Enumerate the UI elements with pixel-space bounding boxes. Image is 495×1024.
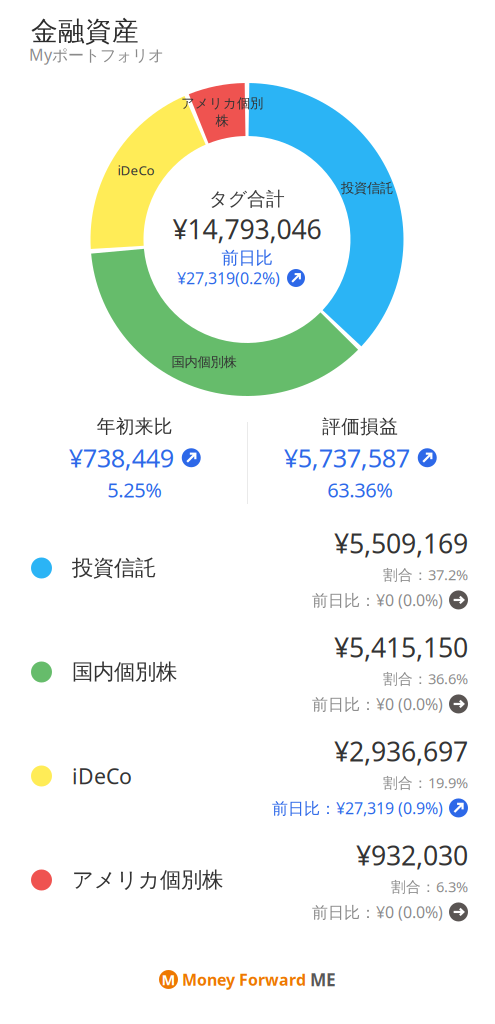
staticText: Myポートフォリオ: [29, 44, 164, 65]
staticText: 5.25%: [107, 477, 162, 503]
staticText: 投資信託: [72, 555, 156, 581]
staticText: 投資信託: [341, 180, 393, 196]
button[interactable]: 国内個別株: [0, 620, 495, 724]
staticText: 割合：6.3%: [391, 877, 468, 896]
staticText: Money Forward: [182, 969, 306, 990]
staticText: ¥2,936,697: [334, 733, 468, 769]
staticText: 年初来比: [97, 415, 173, 438]
staticText: ¥5,737,587: [284, 441, 410, 474]
staticText: 前日比：¥0 (0.0%): [312, 589, 443, 610]
staticText: ¥27,319(0.2%): [177, 267, 280, 289]
button[interactable]: iDeCo: [0, 724, 495, 828]
staticText: 国内個別株: [171, 354, 236, 370]
staticText: ¥932,030: [356, 837, 468, 873]
staticText: アメリカ個別株: [72, 867, 223, 893]
staticText: M: [161, 970, 175, 989]
staticText: 前日比：¥27,319 (0.9%): [272, 797, 443, 818]
staticText: iDeCo: [72, 762, 132, 790]
staticText: 国内個別株: [72, 659, 177, 685]
staticText: ¥5,415,150: [334, 629, 468, 665]
staticText: 63.36%: [327, 477, 393, 503]
staticText: 割合：19.9%: [383, 773, 468, 792]
button[interactable]: M: [159, 968, 336, 991]
staticText: タグ合計: [209, 187, 285, 210]
staticText: 金融資産: [31, 15, 139, 48]
staticText: 前日比：¥0 (0.0%): [312, 901, 443, 922]
button[interactable]: 評価損益: [247, 415, 473, 503]
staticText: ¥14,793,046: [172, 211, 321, 247]
staticText: 割合：37.2%: [383, 565, 468, 584]
staticText: iDeCo: [117, 161, 154, 179]
staticText: 株: [215, 112, 228, 129]
staticText: 前日比：¥0 (0.0%): [312, 693, 443, 714]
button[interactable]: アメリカ個別株: [0, 828, 495, 932]
button[interactable]: 年初来比: [22, 415, 247, 503]
button[interactable]: 投資信託: [0, 516, 495, 620]
staticText: ¥5,509,169: [334, 525, 468, 561]
staticText: 前日比: [221, 247, 272, 269]
staticText: アメリカ個別: [181, 95, 263, 111]
staticText: 割合：36.6%: [383, 669, 468, 688]
staticText: ME: [310, 968, 336, 991]
staticText: 評価損益: [322, 415, 398, 438]
staticText: ¥738,449: [69, 441, 174, 474]
